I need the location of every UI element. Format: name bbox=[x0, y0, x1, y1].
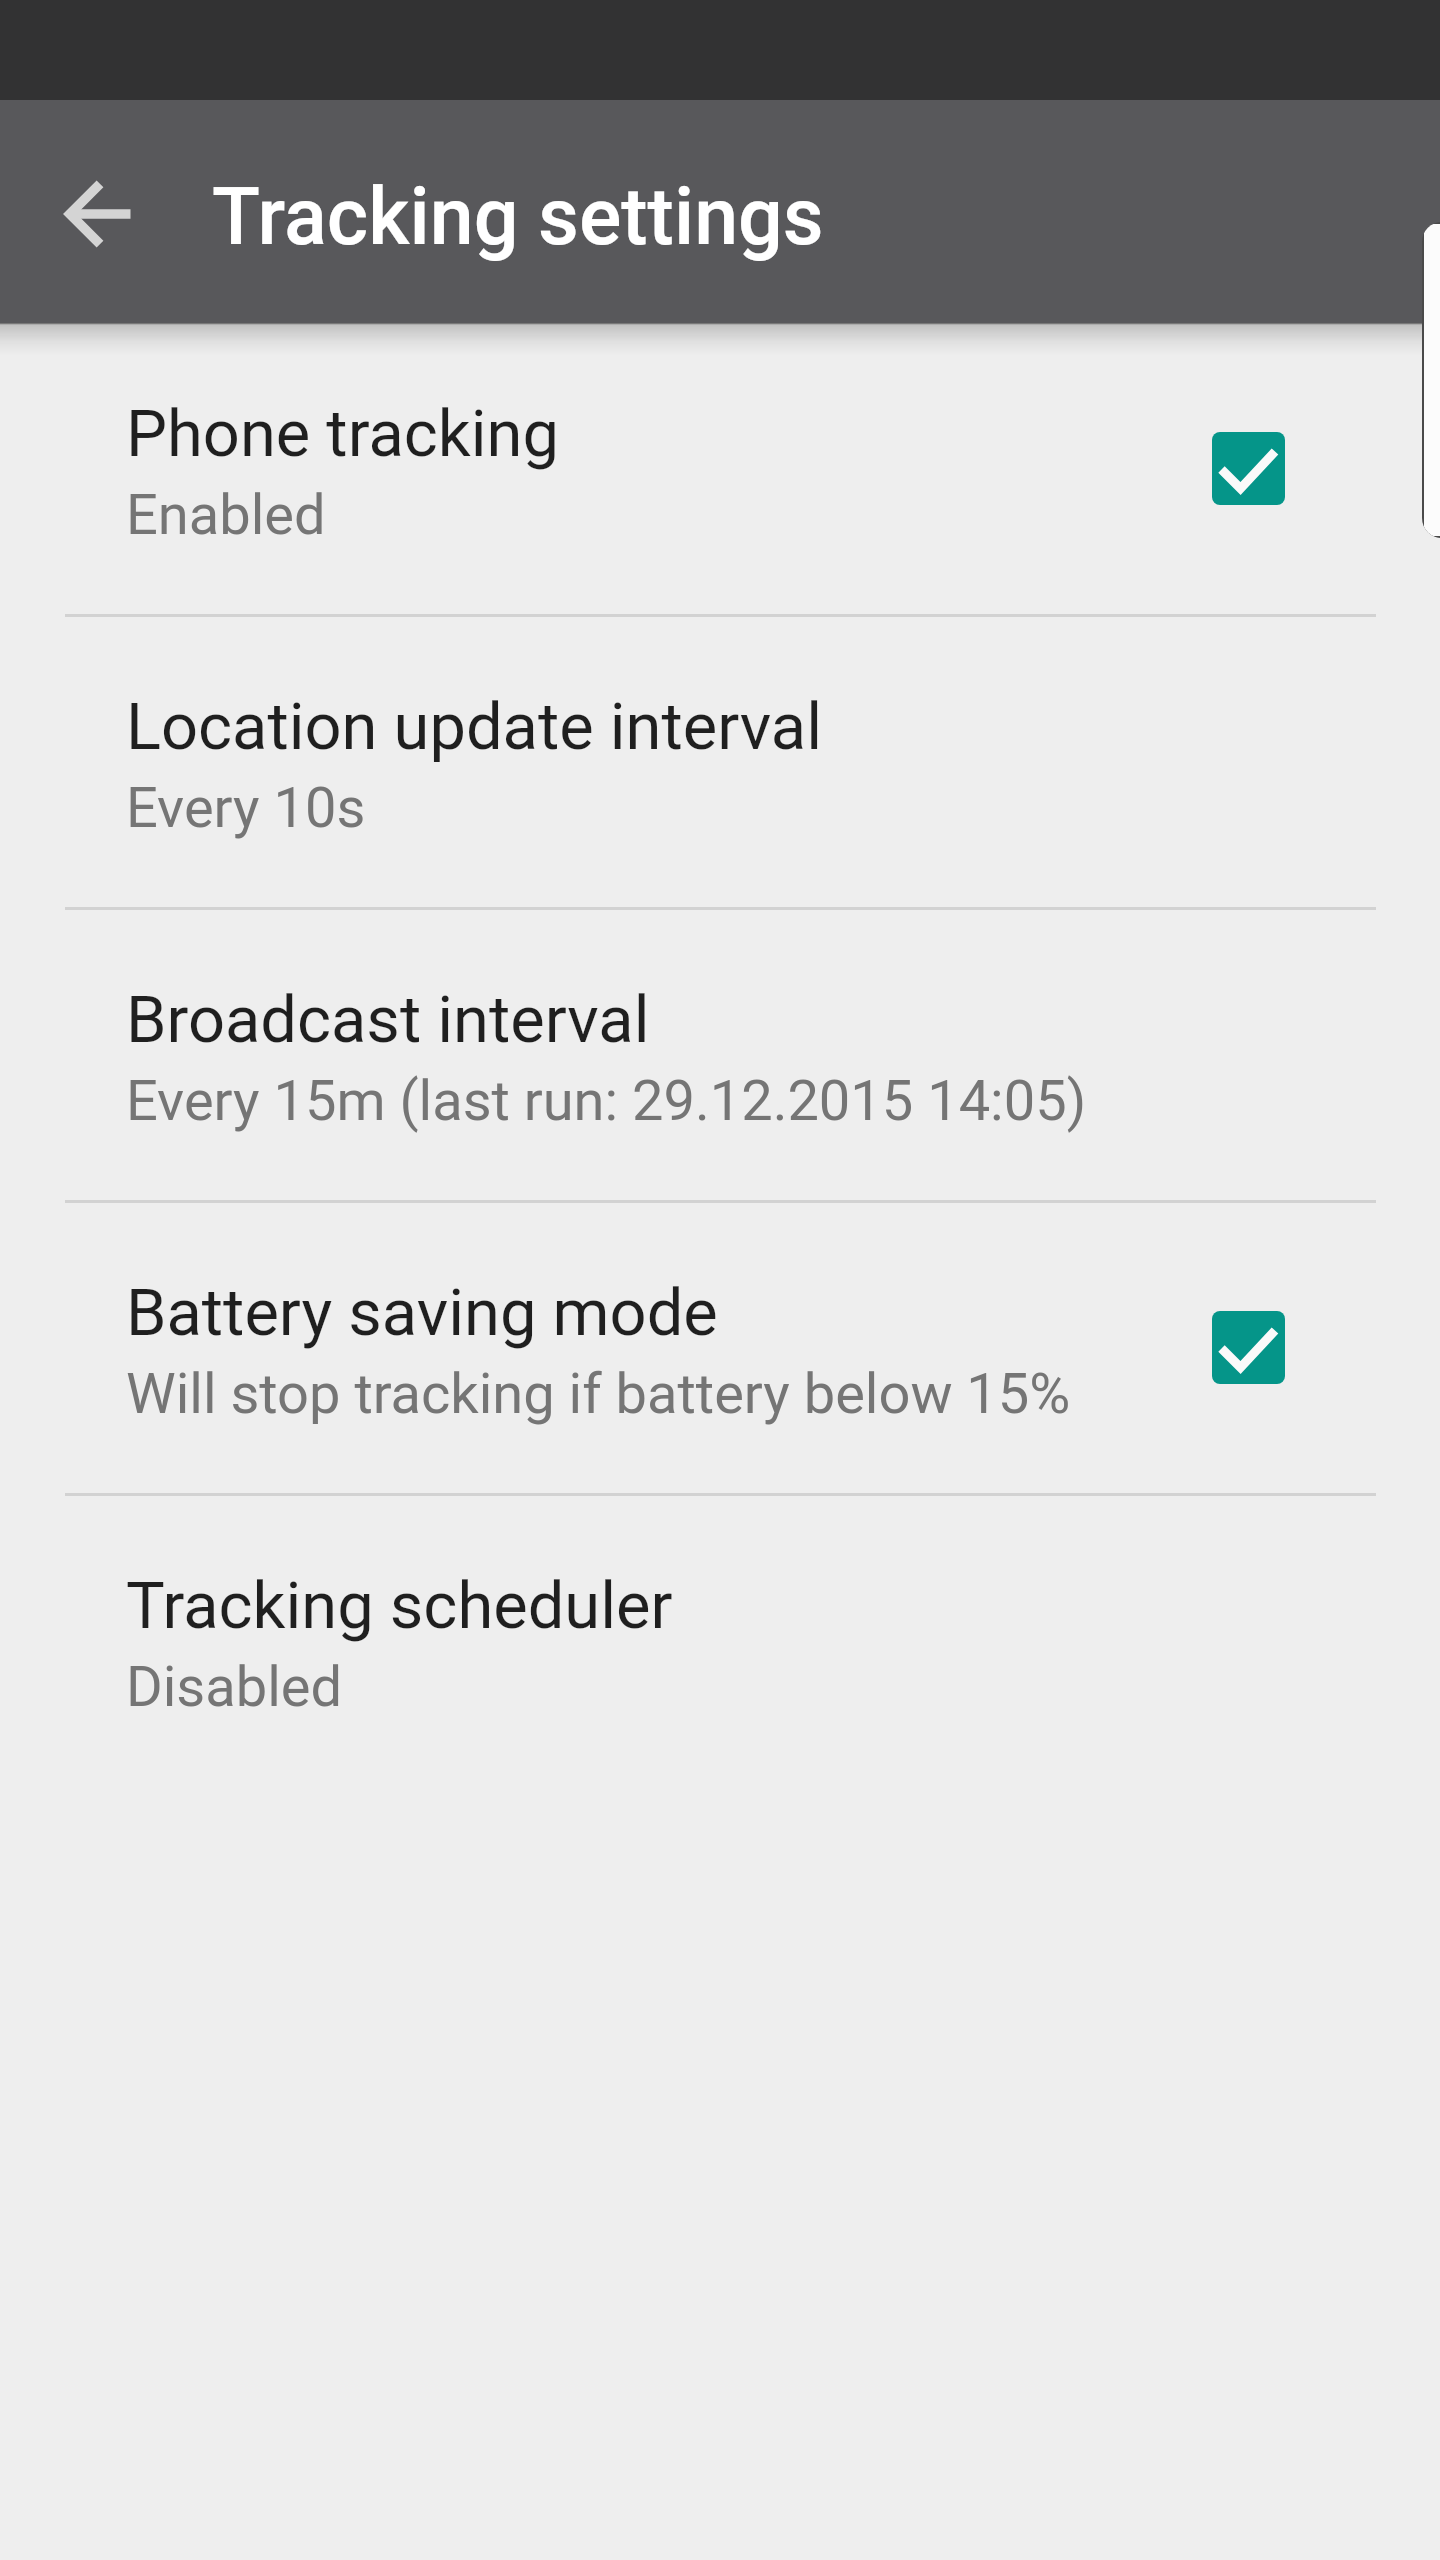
button[interactable]: Toggle Phone tracking bbox=[1212, 432, 1285, 505]
staticText: Will stop tracking if battery below 15% bbox=[126, 1361, 1071, 1427]
button[interactable]: Broadcast interval bbox=[0, 910, 1440, 1200]
button[interactable]: Phone tracking bbox=[0, 324, 1440, 614]
staticText: Every 10s bbox=[126, 775, 366, 841]
button[interactable]: Toggle Battery saving mode bbox=[1212, 1311, 1285, 1384]
staticText: Every 15m (last run: 29.12.2015 14:05) bbox=[126, 1068, 1087, 1134]
staticText: Location update interval bbox=[126, 689, 823, 765]
staticText: Tracking settings bbox=[212, 171, 824, 264]
button[interactable]: Tracking scheduler bbox=[0, 1496, 1440, 1786]
button[interactable]: Navigate up bbox=[37, 150, 165, 278]
staticText: Phone tracking bbox=[126, 396, 559, 472]
staticText: Broadcast interval bbox=[126, 982, 650, 1058]
staticText: Enabled bbox=[126, 482, 326, 548]
button[interactable]: Location update interval bbox=[0, 617, 1440, 907]
staticText: Battery saving mode bbox=[126, 1275, 718, 1351]
staticText: Disabled bbox=[126, 1654, 343, 1720]
staticText: Tracking scheduler bbox=[126, 1568, 673, 1644]
button[interactable]: Battery saving mode bbox=[0, 1203, 1440, 1493]
